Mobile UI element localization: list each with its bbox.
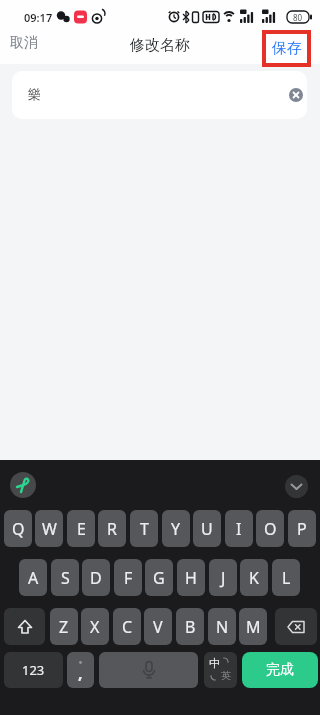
- staticText: V: [153, 616, 163, 638]
- button[interactable]: I: [225, 510, 253, 547]
- button[interactable]: 樂: [12, 71, 307, 119]
- staticText: Z: [59, 616, 69, 638]
- staticText: 中: [209, 656, 220, 670]
- button[interactable]: [99, 652, 198, 688]
- staticText: Q: [12, 518, 25, 540]
- button[interactable]: B: [176, 608, 204, 645]
- staticText: 保存: [272, 39, 302, 58]
- staticText: J: [221, 567, 226, 589]
- staticText: H: [185, 567, 197, 589]
- button[interactable]: F: [114, 559, 142, 596]
- staticText: 123: [22, 661, 45, 679]
- button[interactable]: S: [51, 559, 79, 596]
- button[interactable]: [282, 81, 307, 109]
- staticText: I: [236, 518, 242, 540]
- staticText: 樂: [28, 86, 41, 102]
- button[interactable]: Y: [162, 510, 190, 547]
- button[interactable]: W: [35, 510, 63, 547]
- staticText: R: [107, 518, 117, 540]
- staticText: T: [140, 518, 149, 540]
- staticText: M: [246, 616, 261, 638]
- staticText: 完成: [266, 661, 294, 679]
- staticText: U: [201, 518, 213, 540]
- button[interactable]: 完成: [242, 652, 318, 688]
- staticText: N: [216, 616, 229, 638]
- button[interactable]: 中: [204, 652, 237, 688]
- staticText: ,: [78, 662, 83, 684]
- button[interactable]: 123: [4, 652, 63, 688]
- button[interactable]: P: [288, 510, 316, 547]
- button[interactable]: J: [209, 559, 237, 596]
- button[interactable]: A: [19, 559, 47, 596]
- button[interactable]: [10, 472, 36, 498]
- button[interactable]: L: [272, 559, 300, 596]
- staticText: S: [61, 567, 70, 589]
- button[interactable]: [4, 608, 45, 645]
- staticText: B: [185, 616, 196, 638]
- staticText: C: [122, 616, 133, 638]
- staticText: L: [282, 567, 291, 589]
- staticText: W: [42, 518, 57, 540]
- button[interactable]: V: [144, 608, 172, 645]
- button[interactable]: U: [193, 510, 221, 547]
- staticText: X: [90, 616, 100, 638]
- button[interactable]: T: [130, 510, 158, 547]
- button[interactable]: X: [81, 608, 109, 645]
- button[interactable]: [275, 608, 317, 645]
- staticText: 英: [221, 669, 231, 682]
- staticText: G: [153, 567, 165, 589]
- staticText: K: [249, 567, 259, 589]
- staticText: A: [28, 567, 39, 589]
- staticText: 取消: [10, 34, 38, 52]
- button[interactable]: H: [177, 559, 205, 596]
- button[interactable]: R: [98, 510, 126, 547]
- staticText: Y: [171, 518, 181, 540]
- button[interactable]: [285, 475, 308, 498]
- staticText: P: [297, 518, 307, 540]
- staticText: D: [90, 567, 102, 589]
- button[interactable]: G: [145, 559, 173, 596]
- button[interactable]: M: [239, 608, 267, 645]
- staticText: O: [264, 518, 277, 540]
- button[interactable]: E: [67, 510, 95, 547]
- button[interactable]: O: [256, 510, 284, 547]
- button[interactable]: K: [240, 559, 268, 596]
- button[interactable]: C: [113, 608, 141, 645]
- staticText: 09:17: [24, 10, 53, 25]
- staticText: 修改名称: [130, 36, 190, 55]
- button[interactable]: 保存: [262, 30, 311, 67]
- button[interactable]: Q: [4, 510, 32, 547]
- staticText: F: [124, 567, 133, 589]
- staticText: E: [77, 518, 86, 540]
- button[interactable]: D: [82, 559, 110, 596]
- button[interactable]: 取消: [6, 32, 48, 58]
- button[interactable]: Z: [50, 608, 78, 645]
- button[interactable]: N: [208, 608, 236, 645]
- staticText: 80: [293, 12, 303, 23]
- button[interactable]: ,: [67, 652, 94, 688]
